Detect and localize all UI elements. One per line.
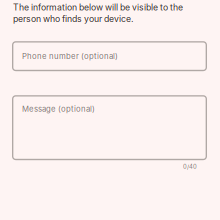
staticText: The information below will be visible to…	[13, 2, 183, 24]
staticText: Phone number (optional)	[22, 51, 118, 61]
button[interactable]: Phone number (optional)	[12, 41, 207, 71]
button[interactable]: Message (optional)	[12, 95, 207, 160]
staticText: Message (optional)	[22, 104, 95, 114]
staticText: 0/40	[183, 163, 197, 170]
